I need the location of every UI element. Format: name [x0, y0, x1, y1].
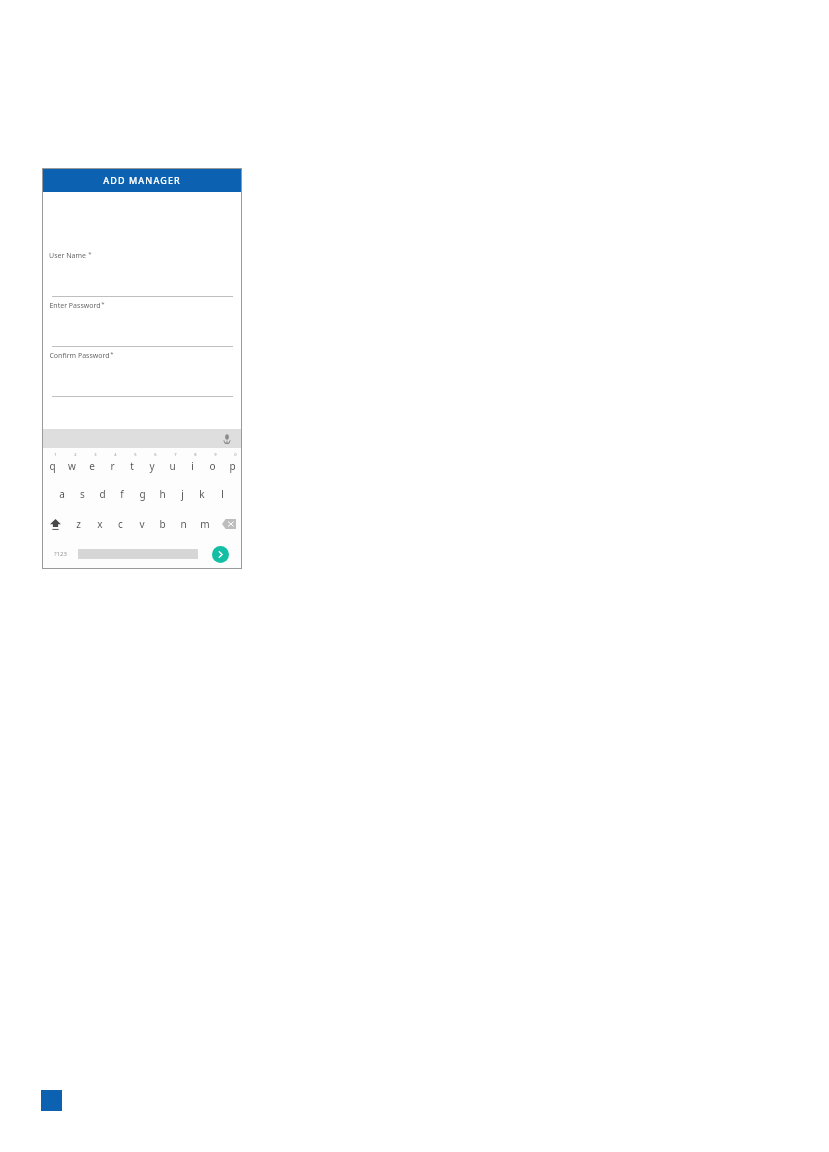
staticText: v — [139, 517, 145, 531]
staticText: * — [88, 250, 92, 258]
staticText: * — [101, 300, 105, 308]
staticText: q — [49, 459, 56, 473]
staticText: 9 — [214, 452, 217, 457]
button[interactable]: g — [132, 479, 152, 509]
button[interactable]: 0 — [222, 449, 242, 479]
button[interactable]: 8 — [182, 449, 202, 479]
staticText: r — [110, 459, 115, 473]
button[interactable]: n — [173, 509, 194, 539]
button[interactable]: Enter Password — [42, 301, 242, 351]
button[interactable]: z — [68, 509, 89, 539]
button[interactable]: a — [52, 479, 72, 509]
staticText: i — [191, 459, 194, 473]
button[interactable]: s — [72, 479, 92, 509]
button[interactable]: b — [152, 509, 173, 539]
staticText: 1 — [54, 452, 57, 457]
staticText: s — [80, 487, 85, 501]
button[interactable]: x — [89, 509, 110, 539]
staticText: Confirm Password — [49, 351, 110, 361]
staticText: 0 — [234, 452, 237, 457]
staticText: y — [149, 459, 155, 473]
button[interactable]: 2 — [62, 449, 82, 479]
button[interactable]: User Name — [42, 251, 242, 301]
staticText: ?123 — [54, 550, 67, 558]
button[interactable]: Backspace — [215, 509, 242, 539]
staticText: j — [181, 487, 184, 501]
staticText: * — [110, 350, 114, 358]
staticText: a — [59, 487, 65, 501]
button[interactable]: c — [110, 509, 131, 539]
staticText: f — [120, 487, 124, 501]
button[interactable]: 7 — [162, 449, 182, 479]
staticText: 6 — [154, 452, 157, 457]
button[interactable]: f — [112, 479, 132, 509]
button[interactable]: 3 — [82, 449, 102, 479]
button[interactable]: Shift — [42, 509, 68, 539]
button[interactable]: v — [131, 509, 152, 539]
staticText: t — [130, 459, 134, 473]
staticText: p — [229, 459, 236, 473]
button[interactable]: 6 — [142, 449, 162, 479]
staticText: u — [169, 459, 176, 473]
button[interactable]: 4 — [102, 449, 122, 479]
staticText: ADD MANAGER — [103, 174, 181, 186]
button[interactable]: Voice input — [220, 432, 234, 446]
staticText: d — [99, 487, 106, 501]
button[interactable]: 9 — [202, 449, 222, 479]
staticText: c — [118, 517, 123, 531]
button[interactable]: ADD MANAGER — [42, 168, 242, 192]
staticText: 3 — [94, 452, 97, 457]
staticText: n — [180, 517, 187, 531]
staticText: 8 — [194, 452, 197, 457]
staticText: z — [76, 517, 81, 531]
button[interactable]: m — [194, 509, 215, 539]
staticText: 4 — [114, 452, 117, 457]
staticText: g — [139, 487, 146, 501]
button[interactable]: 1 — [42, 449, 62, 479]
button[interactable]: ?123 — [42, 539, 78, 569]
button[interactable]: j — [172, 479, 192, 509]
staticText: b — [159, 517, 166, 531]
staticText: o — [209, 459, 216, 473]
staticText: k — [199, 487, 205, 501]
staticText: 7 — [174, 452, 177, 457]
staticText: l — [221, 487, 224, 501]
staticText: e — [89, 459, 95, 473]
button[interactable]: k — [192, 479, 212, 509]
staticText: 2 — [74, 452, 77, 457]
button[interactable]: l — [212, 479, 232, 509]
staticText: Enter Password — [49, 301, 101, 311]
staticText: x — [97, 517, 103, 531]
staticText: w — [68, 459, 76, 473]
staticText: m — [200, 517, 210, 531]
staticText: 5 — [134, 452, 137, 457]
button[interactable]: Enter — [212, 546, 229, 563]
button[interactable]: d — [92, 479, 112, 509]
button[interactable]: Confirm Password — [42, 351, 242, 401]
button[interactable]: 5 — [122, 449, 142, 479]
staticText: h — [159, 487, 166, 501]
staticText: User Name — [49, 251, 86, 261]
button[interactable]: h — [152, 479, 172, 509]
